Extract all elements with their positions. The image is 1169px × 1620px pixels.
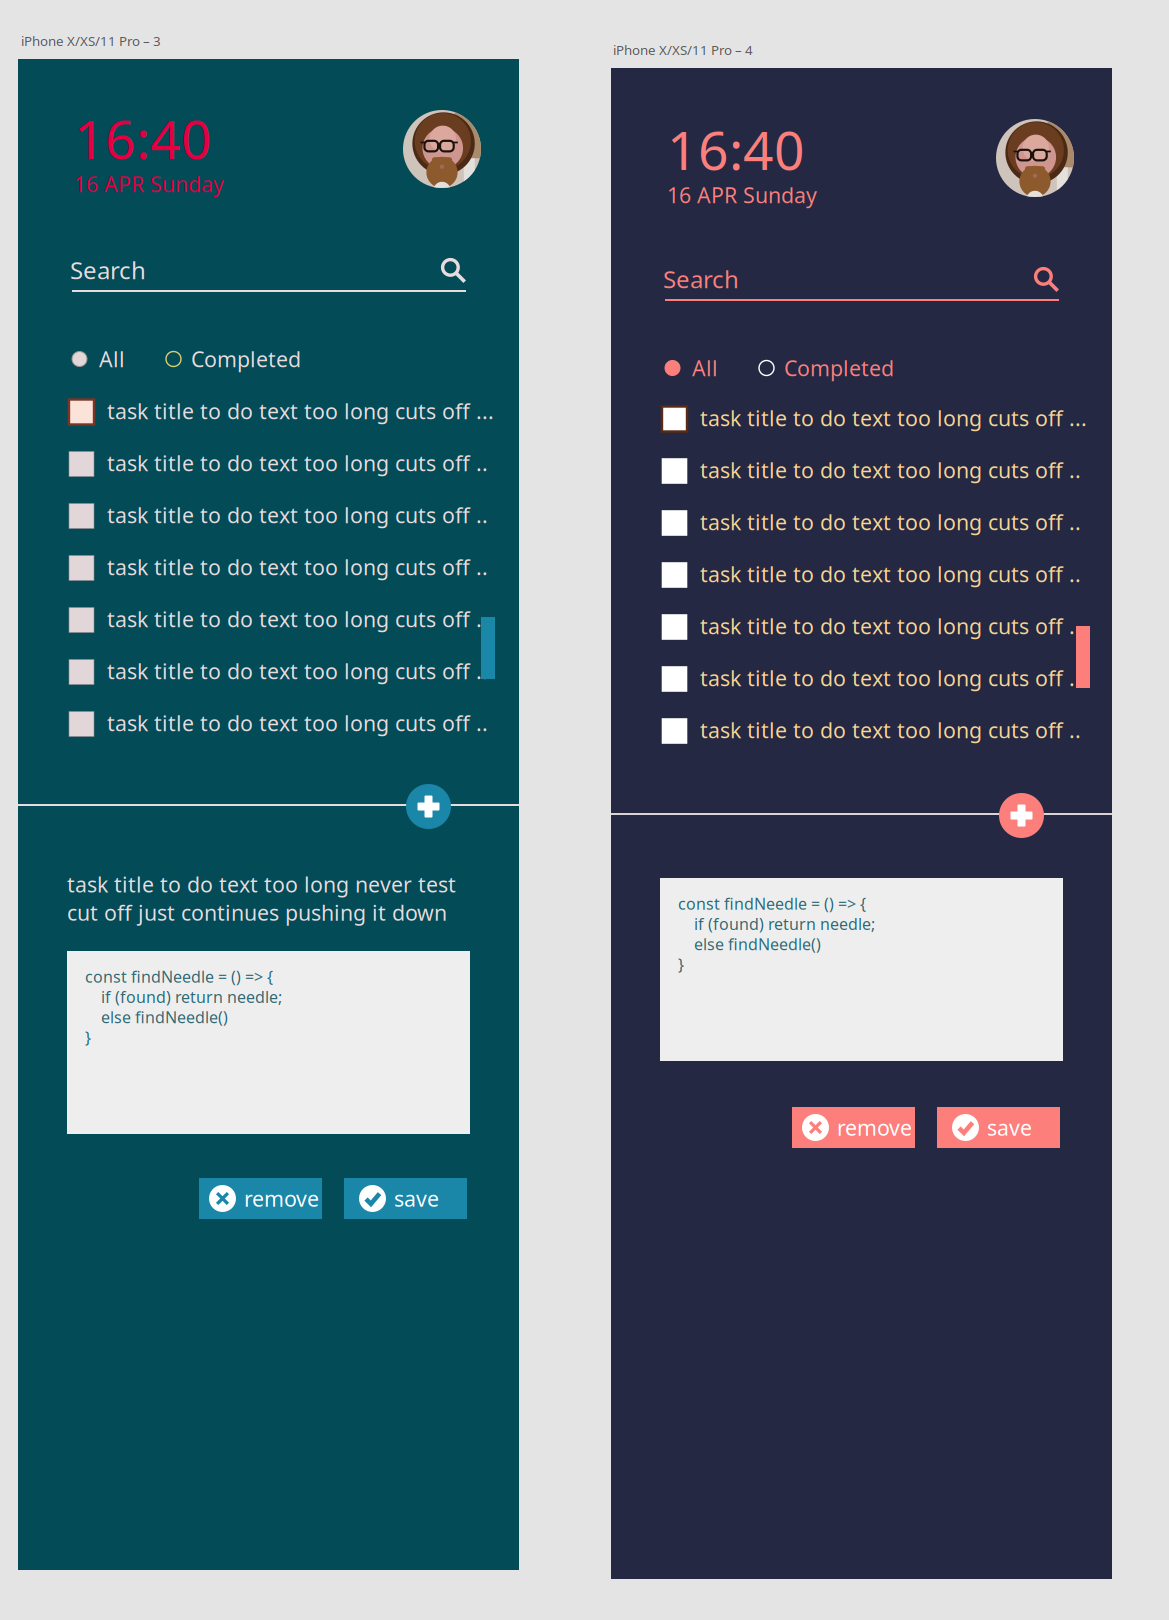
button[interactable]: Add task — [406, 784, 451, 829]
button[interactable]: save — [937, 1107, 1060, 1148]
staticText: remove — [837, 1113, 912, 1142]
button[interactable]: task title to do text too long cuts off … — [662, 549, 1082, 601]
staticText: Search — [663, 263, 739, 295]
button[interactable]: task title to do text too long cuts off … — [662, 705, 1082, 757]
button[interactable]: Add task — [999, 793, 1044, 838]
button[interactable]: Profile — [996, 119, 1074, 197]
button[interactable]: task title to do text too long cuts off … — [69, 646, 489, 698]
staticText: Search — [70, 254, 146, 286]
staticText: task title to do text too long cuts off … — [107, 657, 488, 685]
button[interactable]: Completed — [166, 347, 306, 371]
button[interactable]: task title to do text too long cuts off … — [662, 445, 1082, 497]
staticText: task title to do text too long cuts off … — [700, 508, 1081, 536]
button[interactable]: All — [665, 356, 749, 380]
staticText: iPhone X/XS/11 Pro – 4 — [613, 41, 753, 59]
button[interactable]: task title to do text too long cuts off … — [69, 438, 489, 490]
button[interactable]: task title to do text too long cuts off … — [662, 653, 1082, 705]
button[interactable]: task title to do text too long cuts off … — [69, 386, 489, 438]
staticText: 16:40 — [74, 103, 212, 174]
staticText: task title to do text too long cuts off … — [107, 449, 488, 477]
staticText: else findNeedle() — [85, 1006, 228, 1028]
button[interactable]: Search — [665, 270, 1059, 303]
button[interactable]: task title to do text too long cuts off … — [69, 698, 489, 750]
staticText: cut off just continues pushing it down — [67, 898, 447, 927]
staticText: save — [987, 1113, 1032, 1142]
staticText: } — [678, 954, 684, 975]
staticText: iPhone X/XS/11 Pro – 3 — [21, 32, 161, 50]
staticText: if (found) return needle; — [678, 913, 875, 934]
button[interactable]: remove — [199, 1178, 322, 1219]
staticText: task title to do text too long cuts off … — [700, 716, 1081, 744]
staticText: task title to do text too long cuts off … — [700, 664, 1081, 692]
staticText: task title to do text too long cuts off … — [700, 456, 1081, 484]
staticText: task title to do text too long cuts off … — [107, 605, 488, 633]
staticText: task title to do text too long cuts off … — [700, 404, 1087, 432]
staticText: 16 APR Sunday — [667, 181, 817, 209]
staticText: const findNeedle = () => { — [85, 966, 273, 987]
staticText: task title to do text too long cuts off … — [700, 612, 1081, 640]
staticText: All — [99, 345, 125, 373]
staticText: else findNeedle() — [678, 933, 821, 955]
staticText: Completed — [784, 354, 894, 382]
staticText: if (found) return needle; — [85, 986, 282, 1007]
button[interactable]: Completed — [759, 356, 899, 380]
staticText: task title to do text too long never tes… — [67, 870, 456, 898]
button[interactable]: Search — [72, 261, 466, 294]
button[interactable]: task title to do text too long cuts off … — [69, 542, 489, 594]
button[interactable]: task title to do text too long cuts off … — [662, 497, 1082, 549]
button[interactable]: task title to do text too long cuts off … — [69, 490, 489, 542]
staticText: remove — [244, 1184, 319, 1213]
staticText: 16:40 — [667, 114, 805, 185]
button[interactable]: remove — [792, 1107, 915, 1148]
staticText: save — [394, 1184, 439, 1213]
staticText: Completed — [191, 345, 301, 373]
button[interactable]: Profile — [403, 110, 481, 188]
button[interactable]: task title to do text too long cuts off … — [662, 393, 1082, 445]
staticText: All — [692, 354, 718, 382]
button[interactable]: save — [344, 1178, 467, 1219]
button[interactable]: All — [72, 347, 156, 371]
staticText: } — [85, 1027, 91, 1048]
staticText: const findNeedle = () => { — [678, 893, 866, 914]
staticText: task title to do text too long cuts off … — [107, 553, 488, 581]
button[interactable]: task title to do text too long cuts off … — [69, 594, 489, 646]
button[interactable]: task title to do text too long cuts off … — [662, 601, 1082, 653]
staticText: task title to do text too long cuts off … — [700, 560, 1081, 588]
staticText: 16 APR Sunday — [74, 170, 224, 198]
staticText: task title to do text too long cuts off … — [107, 501, 488, 529]
staticText: task title to do text too long cuts off … — [107, 709, 488, 737]
staticText: task title to do text too long cuts off … — [107, 397, 494, 425]
